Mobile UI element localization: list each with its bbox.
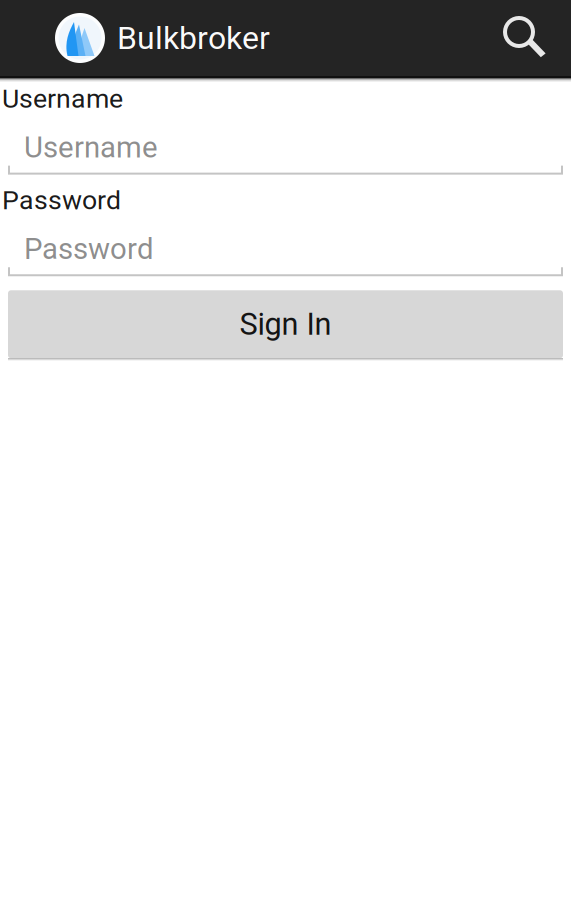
staticText: Bulkbroker [117,19,270,57]
staticText: Password [2,185,121,216]
staticText: Username [24,130,158,165]
button[interactable]: Sign In [8,290,563,360]
button[interactable]: Username [0,114,571,175]
staticText: Sign In [239,306,331,342]
staticText: Password [24,232,154,266]
staticText: Username [2,83,123,114]
button[interactable]: Search [490,0,571,76]
button[interactable]: Password [0,216,571,276]
